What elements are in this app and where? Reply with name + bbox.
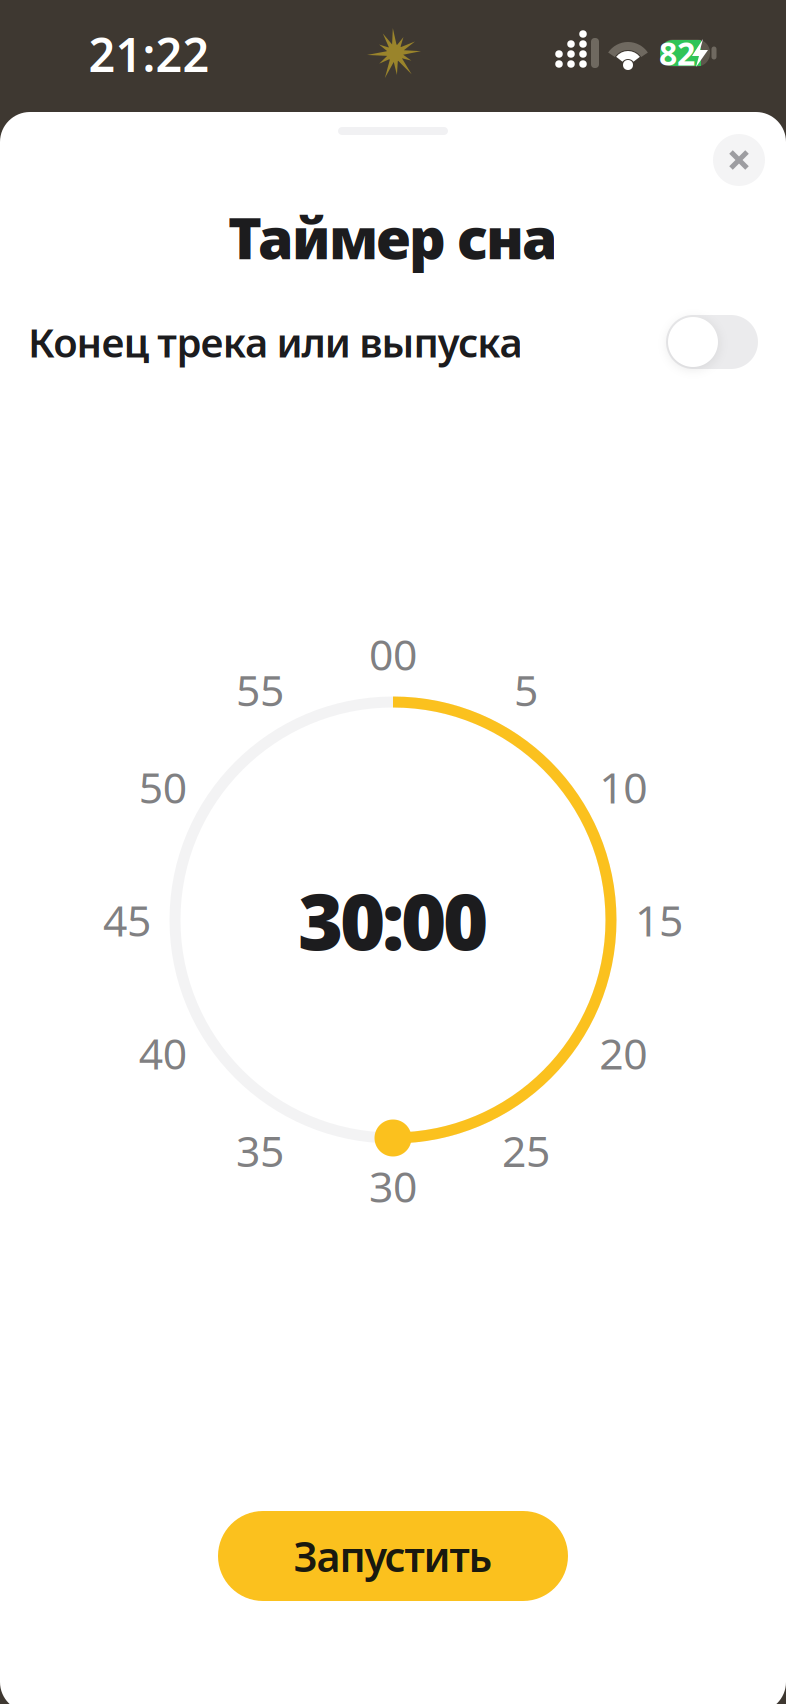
- staticText: Конец трека или выпуска: [28, 315, 522, 368]
- staticText: Запустить: [293, 1529, 492, 1583]
- staticText: 5: [514, 661, 538, 718]
- staticText: 00: [369, 626, 417, 682]
- staticText: 50: [139, 759, 187, 815]
- staticText: 15: [635, 892, 683, 948]
- staticText: 10: [599, 759, 647, 815]
- staticText: 25: [502, 1122, 550, 1179]
- button[interactable]: Запустить: [218, 1511, 568, 1601]
- staticText: 30:00: [298, 869, 488, 971]
- staticText: 20: [599, 1025, 647, 1081]
- button[interactable]: Close: [713, 134, 765, 186]
- staticText: 21:22: [88, 23, 209, 85]
- staticText: 35: [236, 1122, 284, 1179]
- staticText: 40: [139, 1025, 187, 1081]
- staticText: 55: [236, 661, 284, 718]
- staticText: Таймер сна: [228, 199, 558, 275]
- staticText: 82: [659, 32, 695, 74]
- staticText: 30: [369, 1158, 417, 1214]
- button[interactable]: Конец трека или выпуска: [666, 315, 758, 369]
- staticText: 45: [103, 892, 151, 948]
